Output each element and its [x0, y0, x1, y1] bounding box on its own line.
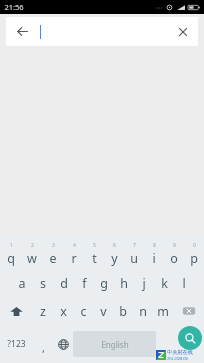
staticText: d [60, 275, 68, 292]
button[interactable]: x [53, 297, 73, 325]
button[interactable] [38, 17, 168, 46]
button[interactable]: z [32, 297, 53, 325]
staticText: y [111, 250, 118, 267]
button[interactable]: Backspace [173, 297, 204, 325]
staticText: o [170, 250, 178, 267]
button[interactable]: , [33, 325, 53, 363]
button[interactable]: 6 [104, 240, 124, 269]
staticText: r [71, 250, 77, 267]
button[interactable]: c [73, 297, 93, 325]
staticText: z [40, 303, 46, 320]
staticText: 9 [173, 242, 176, 249]
staticText: 4 [73, 242, 76, 249]
button[interactable]: m [153, 297, 173, 325]
staticText: g [100, 275, 108, 292]
button[interactable]: 9 [164, 240, 184, 269]
button[interactable]: 3 [42, 240, 63, 269]
staticText: 7 [133, 242, 136, 249]
staticText: 6 [113, 242, 116, 249]
button[interactable]: Search [178, 326, 202, 350]
staticText: p [190, 250, 198, 267]
staticText: s [40, 275, 46, 292]
button[interactable]: s [32, 269, 53, 297]
button[interactable]: English [73, 331, 156, 357]
button[interactable]: 5 [84, 240, 104, 269]
staticText: l [182, 275, 186, 292]
staticText: 中关村在线 [167, 349, 193, 356]
button[interactable]: f [74, 269, 94, 297]
button[interactable]: 0 [184, 240, 204, 269]
staticText: 21:56 [4, 2, 24, 12]
button[interactable]: k [154, 269, 174, 297]
staticText: , [42, 340, 45, 355]
button[interactable]: 4 [63, 240, 84, 269]
staticText: 3 [52, 242, 55, 249]
button[interactable]: 1 [0, 240, 21, 269]
button[interactable]: j [134, 269, 154, 297]
button[interactable]: 2 [21, 240, 42, 269]
staticText: n [139, 303, 147, 320]
staticText: v [100, 303, 107, 320]
staticText: x [60, 303, 67, 320]
button[interactable]: a [11, 269, 32, 297]
staticText: 2 [31, 242, 34, 249]
button[interactable]: n [133, 297, 153, 325]
staticText: English [101, 339, 129, 350]
staticText: 0 [193, 242, 196, 249]
button[interactable]: g [94, 269, 114, 297]
staticText: ZOL.COM.CN [167, 356, 188, 361]
staticText: j [142, 275, 146, 292]
button[interactable]: b [113, 297, 133, 325]
button[interactable]: Back [6, 17, 38, 46]
staticText: f [82, 275, 87, 292]
staticText: ?123 [7, 338, 26, 350]
staticText: 1 [10, 242, 13, 249]
staticText: b [119, 303, 127, 320]
staticText: c [80, 303, 87, 320]
button[interactable]: Clear [168, 17, 198, 46]
staticText: a [18, 275, 26, 292]
button[interactable]: d [53, 269, 74, 297]
staticText: u [130, 250, 138, 267]
button[interactable]: 8 [144, 240, 164, 269]
button[interactable]: v [93, 297, 113, 325]
staticText: i [152, 250, 156, 267]
button[interactable]: Shift [0, 297, 32, 325]
button[interactable]: l [174, 269, 194, 297]
button[interactable]: Change language [53, 325, 73, 363]
staticText: h [120, 275, 128, 292]
staticText: 5 [93, 242, 96, 249]
staticText: m [157, 303, 169, 320]
staticText: e [49, 250, 57, 267]
button[interactable]: h [114, 269, 134, 297]
button[interactable]: ?123 [0, 325, 33, 363]
staticText: t [92, 250, 97, 267]
staticText: k [161, 275, 168, 292]
staticText: 8 [153, 242, 156, 249]
staticText: q [7, 250, 15, 267]
button[interactable]: 7 [124, 240, 144, 269]
staticText: w [27, 250, 37, 267]
